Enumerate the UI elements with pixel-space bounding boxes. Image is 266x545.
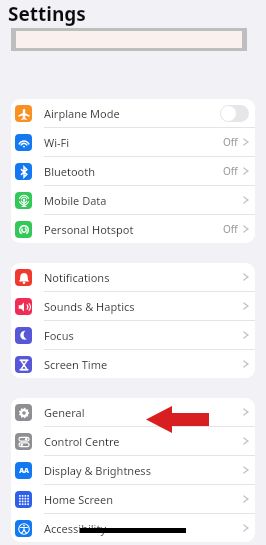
button[interactable]: General: [11, 398, 255, 427]
button[interactable]: Personal Hotspot: [11, 215, 255, 243]
staticText: Airplane Mode: [44, 106, 120, 121]
button[interactable]: Search: [11, 28, 247, 51]
staticText: Notifications: [44, 270, 110, 285]
staticText: Mobile Data: [44, 193, 107, 208]
button[interactable]: Notifications: [11, 263, 255, 292]
staticText: Control Centre: [44, 434, 120, 449]
button[interactable]: Accessibility: [11, 514, 255, 542]
staticText: Wi-Fi: [44, 135, 70, 150]
staticText: Off: [223, 135, 238, 149]
button[interactable]: Mobile Data: [11, 186, 255, 215]
staticText: Accessibility: [44, 521, 107, 536]
button[interactable]: Screen Time: [11, 350, 255, 378]
button[interactable]: Control Centre: [11, 427, 255, 456]
staticText: Screen Time: [44, 357, 108, 372]
staticText: Off: [223, 164, 238, 178]
button[interactable]: Airplane Mode: [11, 99, 255, 128]
staticText: General: [44, 405, 85, 420]
button[interactable]: Bluetooth: [11, 157, 255, 186]
staticText: Off: [223, 222, 238, 236]
staticText: Bluetooth: [44, 164, 96, 179]
button[interactable]: Wi-Fi: [11, 128, 255, 157]
staticText: Display & Brightness: [44, 463, 151, 478]
button[interactable]: Home Screen: [11, 485, 255, 514]
staticText: Sounds & Haptics: [44, 299, 135, 314]
button[interactable]: AA: [11, 456, 255, 485]
button[interactable]: Focus: [11, 321, 255, 350]
staticText: Personal Hotspot: [44, 222, 134, 237]
staticText: Focus: [44, 328, 74, 343]
staticText: AA: [19, 466, 29, 476]
staticText: Settings: [8, 1, 86, 27]
button[interactable]: Sounds & Haptics: [11, 292, 255, 321]
staticText: Home Screen: [44, 492, 114, 507]
